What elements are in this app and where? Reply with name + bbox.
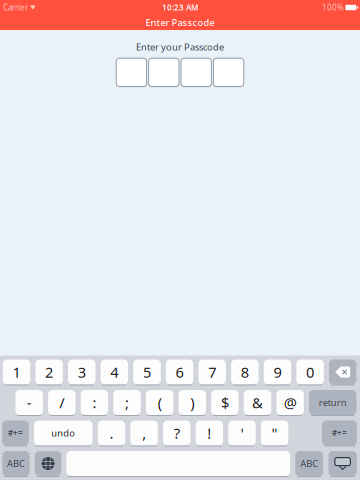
staticText: 9: [273, 362, 281, 382]
button[interactable]: ,: [130, 420, 158, 446]
staticText: @: [284, 393, 297, 412]
staticText: [175, 448, 181, 478]
button[interactable]: :: [81, 390, 108, 416]
staticText: #+=: [332, 428, 347, 438]
staticText: return: [319, 396, 347, 409]
staticText: :: [92, 393, 96, 412]
button[interactable]: 5: [133, 359, 161, 385]
staticText: ): [190, 393, 194, 412]
staticText: 10:23 AM: [162, 2, 198, 13]
button[interactable]: /: [48, 390, 75, 416]
staticText: ": [272, 423, 278, 443]
staticText: 100%: [322, 2, 344, 13]
staticText: 5: [143, 362, 151, 382]
button[interactable]: Delete: [329, 359, 356, 385]
staticText: Enter your Passcode: [136, 41, 224, 53]
button[interactable]: return: [309, 390, 356, 416]
button[interactable]: 7: [198, 359, 226, 385]
staticText: 2: [45, 362, 53, 382]
button[interactable]: 2: [35, 359, 63, 385]
staticText: 0: [306, 362, 314, 382]
button[interactable]: Next keyboard: [35, 451, 61, 477]
button[interactable]: ABC: [2, 451, 30, 477]
button[interactable]: ): [179, 390, 206, 416]
staticText: ?: [174, 423, 180, 443]
button[interactable]: ABC: [295, 451, 323, 477]
staticText: $: [221, 393, 229, 412]
button[interactable]: 8: [231, 359, 258, 385]
button[interactable]: -: [15, 390, 43, 416]
staticText: #+=: [8, 428, 23, 438]
staticText: Carrier: [3, 2, 28, 13]
button[interactable]: 6: [166, 359, 193, 385]
staticText: ABC: [7, 457, 25, 470]
staticText: !: [207, 423, 211, 443]
button[interactable]: space: [66, 451, 290, 477]
button[interactable]: 1: [3, 359, 30, 385]
staticText: 6: [176, 362, 184, 382]
button[interactable]: .: [98, 420, 125, 446]
staticText: 3: [78, 362, 86, 382]
staticText: 8: [241, 362, 249, 382]
staticText: ;: [125, 393, 129, 412]
button[interactable]: Hide keyboard: [328, 451, 357, 477]
button[interactable]: #+=: [2, 420, 29, 446]
button[interactable]: ": [261, 420, 288, 446]
staticText: ': [240, 423, 243, 443]
staticText: /: [59, 393, 64, 412]
button[interactable]: @: [276, 390, 304, 416]
button[interactable]: 9: [264, 359, 291, 385]
staticText: undo: [51, 427, 75, 439]
staticText: 7: [208, 362, 216, 382]
staticText: ABC: [300, 457, 318, 470]
button[interactable]: #+=: [322, 420, 357, 446]
button[interactable]: &: [244, 390, 271, 416]
staticText: 1: [12, 362, 20, 382]
staticText: ,: [142, 423, 146, 443]
button[interactable]: ': [228, 420, 256, 446]
staticText: 4: [110, 362, 118, 382]
button[interactable]: 0: [296, 359, 324, 385]
staticText: &: [252, 393, 263, 412]
button[interactable]: 4: [101, 359, 128, 385]
staticText: Enter Passcode: [145, 16, 214, 29]
button[interactable]: undo: [34, 420, 93, 446]
button[interactable]: ?: [163, 420, 190, 446]
button[interactable]: 3: [68, 359, 95, 385]
button[interactable]: ;: [113, 390, 141, 416]
staticText: (: [158, 393, 162, 412]
button[interactable]: $: [211, 390, 239, 416]
button[interactable]: !: [196, 420, 223, 446]
staticText: -: [27, 393, 32, 412]
button[interactable]: (: [146, 390, 173, 416]
staticText: .: [109, 423, 113, 443]
